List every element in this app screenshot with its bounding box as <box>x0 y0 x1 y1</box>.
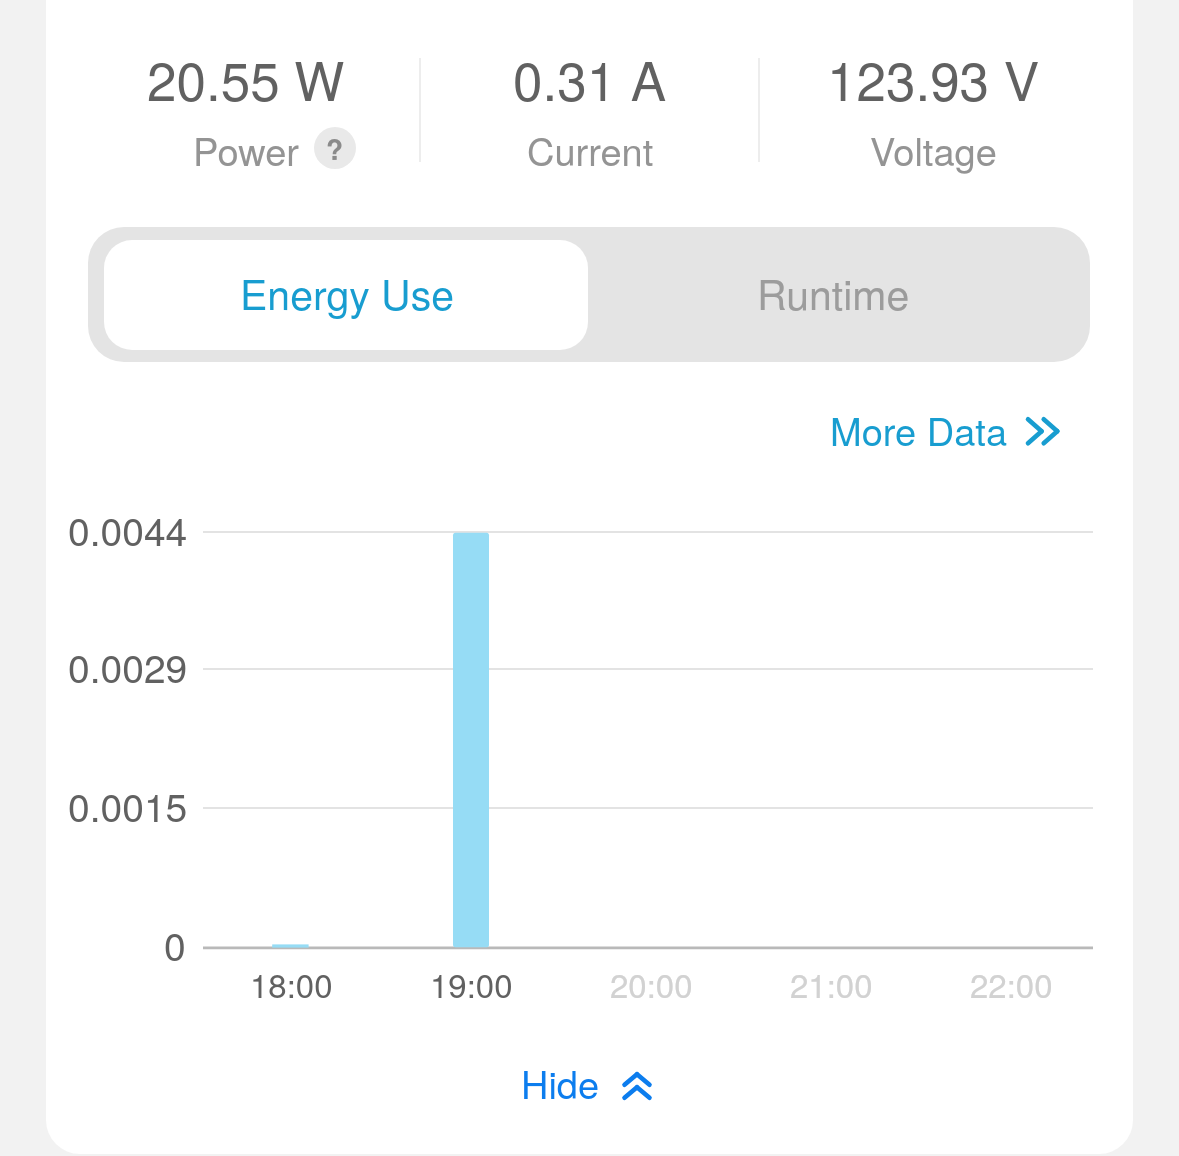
other: More data <box>1018 408 1066 456</box>
staticText: Runtime <box>757 263 910 322</box>
staticText: Voltage <box>870 122 997 176</box>
staticText: 0.0044 <box>68 501 188 557</box>
staticText: More Data <box>830 402 1008 456</box>
staticText: Power <box>193 122 299 176</box>
button[interactable]: 0.31 A <box>418 30 762 172</box>
button[interactable]: 20.55 W <box>74 30 418 172</box>
other: Hide <box>613 1064 661 1112</box>
staticText: 21:00 <box>790 960 873 1007</box>
staticText: 20.55 W <box>147 40 345 116</box>
staticText: 0 <box>164 916 186 972</box>
staticText: 123.93 V <box>827 40 1040 116</box>
staticText: 0.0029 <box>68 638 188 694</box>
staticText: 0.0015 <box>68 777 188 833</box>
staticText: ? <box>326 128 344 168</box>
staticText: 19:00 <box>430 960 513 1007</box>
staticText: Hide <box>521 1055 600 1109</box>
staticText: 18:00 <box>250 960 333 1007</box>
button[interactable]: Runtime <box>588 240 1090 350</box>
staticText: 20:00 <box>610 960 693 1007</box>
button[interactable]: What is Power? <box>314 127 356 169</box>
staticText: 22:00 <box>970 960 1053 1007</box>
button[interactable]: Energy Use <box>104 240 588 350</box>
staticText: Energy Use <box>240 263 454 322</box>
button[interactable]: More Data <box>820 396 1070 460</box>
button[interactable]: 123.93 V <box>761 30 1105 172</box>
staticText: Current <box>527 122 654 176</box>
staticText: 0.31 A <box>513 40 667 116</box>
button[interactable]: Hide <box>500 1052 670 1114</box>
